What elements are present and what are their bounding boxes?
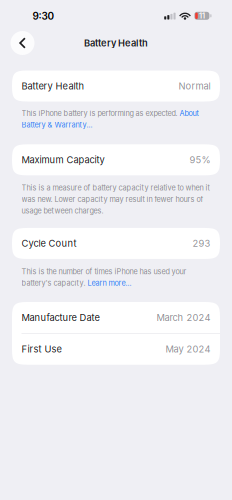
staticText: May 2024 <box>165 344 210 355</box>
button[interactable]: Back <box>10 31 34 55</box>
staticText: Battery Health <box>84 37 148 49</box>
staticText: Battery Health <box>21 80 84 92</box>
button[interactable]: Battery Health <box>12 70 220 101</box>
staticText: Manufacture Date <box>21 312 99 323</box>
button[interactable]: First Use <box>12 334 220 365</box>
staticText: Cycle Count <box>21 238 76 249</box>
button[interactable]: Manufacture Date <box>12 302 220 333</box>
button[interactable]: Maximum Capacity <box>12 144 220 175</box>
staticText: This iPhone battery is performing as exp… <box>21 109 198 129</box>
staticText: Maximum Capacity <box>21 154 104 165</box>
staticText: March 2024 <box>156 312 210 323</box>
staticText: 95% <box>189 154 210 165</box>
staticText: 293 <box>192 238 210 249</box>
staticText: 11 <box>199 11 205 20</box>
staticText: First Use <box>21 344 61 355</box>
staticText: This is the number of times iPhone has u… <box>21 267 186 287</box>
staticText: 9:30 <box>32 10 54 22</box>
staticText: Normal <box>178 80 210 92</box>
staticText: This is a measure of battery capacity re… <box>21 183 209 215</box>
button[interactable]: Cycle Count <box>12 228 220 259</box>
